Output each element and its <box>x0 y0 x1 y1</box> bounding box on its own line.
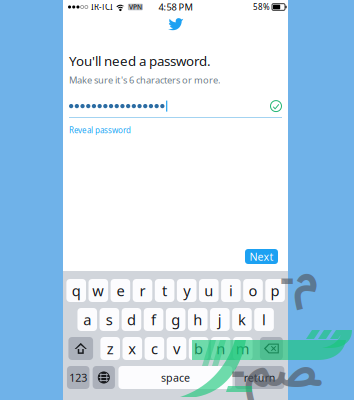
staticText: space <box>161 370 190 385</box>
staticText: l <box>262 310 266 329</box>
staticText: n <box>216 339 225 358</box>
staticText: o <box>248 281 257 300</box>
staticText: v <box>173 339 180 358</box>
button[interactable]: c <box>145 337 164 360</box>
staticText: y <box>183 281 190 300</box>
button[interactable]: u <box>199 279 219 302</box>
staticText: 123 <box>69 370 87 385</box>
button[interactable]: f <box>144 308 163 331</box>
staticText: p <box>271 281 280 300</box>
staticText: IR-TCI <box>91 2 113 12</box>
button[interactable]: y <box>177 279 196 302</box>
button[interactable]: h <box>188 308 207 331</box>
button[interactable]: x <box>122 337 142 360</box>
staticText: f <box>151 310 156 329</box>
staticText: i <box>229 281 233 300</box>
staticText: You'll need a password. <box>69 52 211 70</box>
staticText: u <box>204 281 213 300</box>
button[interactable]: s <box>100 308 119 331</box>
button[interactable]: o <box>243 279 263 302</box>
staticText: j <box>218 310 222 329</box>
button[interactable]: a <box>77 308 97 331</box>
button[interactable]: Next keyboard <box>93 366 115 389</box>
staticText: b <box>194 339 203 358</box>
staticText: g <box>171 310 180 329</box>
button[interactable]: d <box>122 308 141 331</box>
staticText: m <box>236 339 250 358</box>
button[interactable]: Delete <box>260 337 283 360</box>
button[interactable]: e <box>111 279 130 302</box>
button[interactable]: m <box>233 337 253 360</box>
button[interactable]: Next <box>245 249 278 264</box>
button[interactable]: t <box>155 279 174 302</box>
staticText: return <box>244 370 276 385</box>
button[interactable]: i <box>221 279 241 302</box>
staticText: a <box>83 310 91 329</box>
staticText: t <box>162 281 167 300</box>
staticText: x <box>128 339 136 358</box>
staticText: 58% <box>253 2 270 12</box>
staticText: r <box>139 281 145 300</box>
staticText: VPN <box>129 3 142 11</box>
staticText: k <box>238 310 246 329</box>
button[interactable]: j <box>210 308 230 331</box>
button[interactable]: p <box>265 279 285 302</box>
button[interactable]: space <box>118 366 232 389</box>
staticText: Reveal password <box>69 125 131 135</box>
button[interactable]: q <box>66 279 86 302</box>
button[interactable]: 123 <box>67 366 89 389</box>
button[interactable]: k <box>232 308 252 331</box>
staticText: z <box>107 339 114 358</box>
button[interactable]: r <box>133 279 152 302</box>
button[interactable]: Shift <box>68 337 93 360</box>
staticText: w <box>92 281 104 300</box>
button[interactable]: return <box>235 366 284 389</box>
staticText: s <box>106 310 113 329</box>
button[interactable]: n <box>211 337 230 360</box>
button[interactable]: Reveal password <box>69 125 131 135</box>
staticText: مصمم <box>230 233 317 400</box>
staticText: q <box>72 281 81 300</box>
staticText: Next <box>249 249 273 264</box>
staticText: e <box>116 281 124 300</box>
staticText: d <box>127 310 136 329</box>
button[interactable]: Twitter <box>168 16 183 31</box>
staticText: 4:58 PM <box>158 1 192 13</box>
button[interactable]: b <box>189 337 208 360</box>
button[interactable]: z <box>100 337 120 360</box>
button[interactable]: v <box>167 337 186 360</box>
button[interactable]: l <box>254 308 274 331</box>
button[interactable]: w <box>88 279 108 302</box>
staticText: h <box>193 310 202 329</box>
staticText: Make sure it's 6 characters or more. <box>69 74 221 86</box>
button[interactable]: g <box>166 308 185 331</box>
staticText: c <box>151 339 158 358</box>
